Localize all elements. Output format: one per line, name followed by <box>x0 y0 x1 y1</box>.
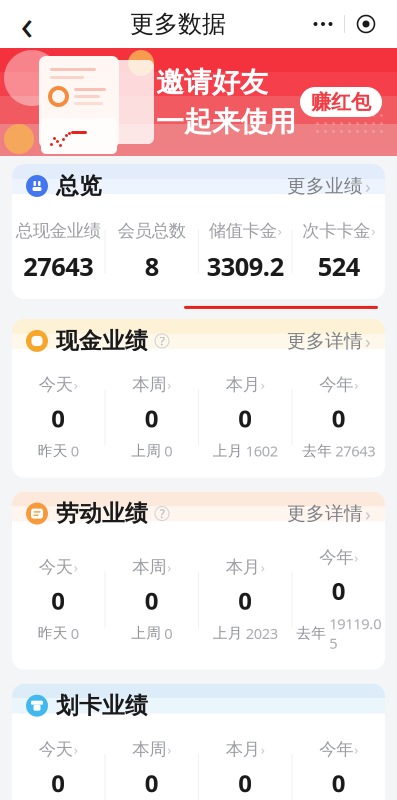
staticText: 去年 <box>302 442 332 460</box>
staticText: 19119.05 <box>329 614 381 653</box>
button[interactable]: 今天 <box>12 728 104 800</box>
staticText: 本周 <box>132 739 166 760</box>
staticText: › <box>365 328 371 353</box>
button[interactable]: 今年 <box>292 363 385 471</box>
staticText: 本月 <box>226 739 260 760</box>
staticText: 上月 <box>213 624 243 642</box>
staticText: 0 <box>71 441 79 461</box>
staticText: 0 <box>238 402 252 434</box>
button[interactable]: 赚红包 <box>300 87 382 117</box>
staticText: 赚红包 <box>311 90 371 114</box>
staticText: 0 <box>71 623 79 643</box>
button[interactable]: 更多业绩 <box>277 167 371 205</box>
staticText: 27643 <box>23 249 93 283</box>
staticText: 现金业绩 <box>56 327 148 355</box>
button[interactable]: 今年 <box>292 536 385 664</box>
staticText: 劳动业绩 <box>56 500 148 527</box>
staticText: › <box>167 376 171 393</box>
staticText: 2023 <box>246 623 278 643</box>
button[interactable]: 今天 <box>12 363 104 471</box>
staticText: 上周 <box>131 624 161 642</box>
staticText: 3309.2 <box>207 249 284 283</box>
staticText: 0 <box>145 585 159 616</box>
staticText: 总览 <box>56 172 102 200</box>
staticText: 8 <box>145 249 159 283</box>
staticText: 0 <box>51 585 65 616</box>
staticText: › <box>261 740 265 758</box>
button[interactable]: 更多详情 <box>277 321 371 360</box>
staticText: › <box>74 558 78 576</box>
staticText: 更多详情 <box>287 502 363 525</box>
staticText: 27643 <box>335 441 375 461</box>
staticText: 0 <box>164 441 172 461</box>
staticText: 会员总数 <box>118 220 186 241</box>
staticText: 上周 <box>131 442 161 460</box>
staticText: 一起来使用 <box>156 104 296 139</box>
button[interactable]: 更多详情 <box>277 494 371 533</box>
button[interactable]: Back <box>0 1 54 47</box>
staticText: 0 <box>164 623 172 643</box>
staticText: 昨天 <box>38 442 68 460</box>
button[interactable]: 本月 <box>199 728 291 800</box>
staticText: › <box>278 222 282 239</box>
staticText: ? <box>159 506 164 521</box>
staticText: 0 <box>332 402 346 434</box>
staticText: ? <box>159 333 164 349</box>
button[interactable]: 本周 <box>105 545 198 654</box>
staticText: 今天 <box>39 739 73 760</box>
button[interactable]: 次卡卡金 <box>292 208 385 295</box>
staticText: › <box>354 376 358 393</box>
button[interactable]: Close <box>345 7 387 41</box>
staticText: 更多数据 <box>130 9 226 39</box>
button[interactable]: 本月 <box>199 363 291 471</box>
staticText: 0 <box>51 767 65 799</box>
staticText: 0 <box>238 767 252 799</box>
staticText: › <box>261 558 265 576</box>
staticText: 总现金业绩 <box>16 220 101 241</box>
staticText: ‹ <box>20 0 33 51</box>
staticText: 邀请好友 <box>156 65 268 99</box>
staticText: 0 <box>51 402 65 434</box>
staticText: › <box>365 174 371 198</box>
staticText: 1602 <box>246 441 278 461</box>
staticText: 今天 <box>39 556 73 578</box>
button[interactable]: 今年 <box>292 728 385 800</box>
staticText: › <box>74 740 78 758</box>
staticText: 今天 <box>39 374 73 395</box>
button[interactable]: 本周 <box>105 363 198 471</box>
staticText: › <box>371 222 375 239</box>
staticText: › <box>365 501 371 526</box>
staticText: 更多详情 <box>287 329 363 352</box>
staticText: 0 <box>145 402 159 434</box>
staticText: 今年 <box>319 374 353 395</box>
staticText: 0 <box>332 575 346 607</box>
staticText: 本月 <box>226 374 260 395</box>
staticText: 上月 <box>213 442 243 460</box>
staticText: › <box>74 376 78 393</box>
staticText: › <box>354 548 358 566</box>
staticText: 0 <box>145 767 159 799</box>
staticText: 本周 <box>132 556 166 578</box>
button[interactable]: 储值卡金 <box>199 208 291 295</box>
button[interactable]: More options <box>302 7 344 41</box>
staticText: 本周 <box>132 374 166 395</box>
staticText: 今年 <box>319 547 353 568</box>
staticText: 去年 <box>296 624 326 642</box>
staticText: 更多业绩 <box>287 174 363 197</box>
button[interactable]: 会员总数 <box>105 208 198 295</box>
button[interactable]: 总现金业绩 <box>12 208 104 295</box>
staticText: 本月 <box>226 556 260 578</box>
staticText: › <box>261 376 265 393</box>
button[interactable]: 今天 <box>12 545 104 654</box>
staticText: 524 <box>318 249 360 283</box>
staticText: 昨天 <box>38 624 68 642</box>
staticText: 0 <box>332 767 346 799</box>
staticText: › <box>167 740 171 758</box>
staticText: › <box>354 740 358 758</box>
staticText: 划卡业绩 <box>56 692 148 720</box>
staticText: 次卡卡金 <box>302 220 370 241</box>
staticText: 储值卡金 <box>209 220 277 241</box>
button[interactable]: 本周 <box>105 728 198 800</box>
button[interactable]: 本月 <box>199 545 291 654</box>
staticText: 0 <box>238 585 252 616</box>
